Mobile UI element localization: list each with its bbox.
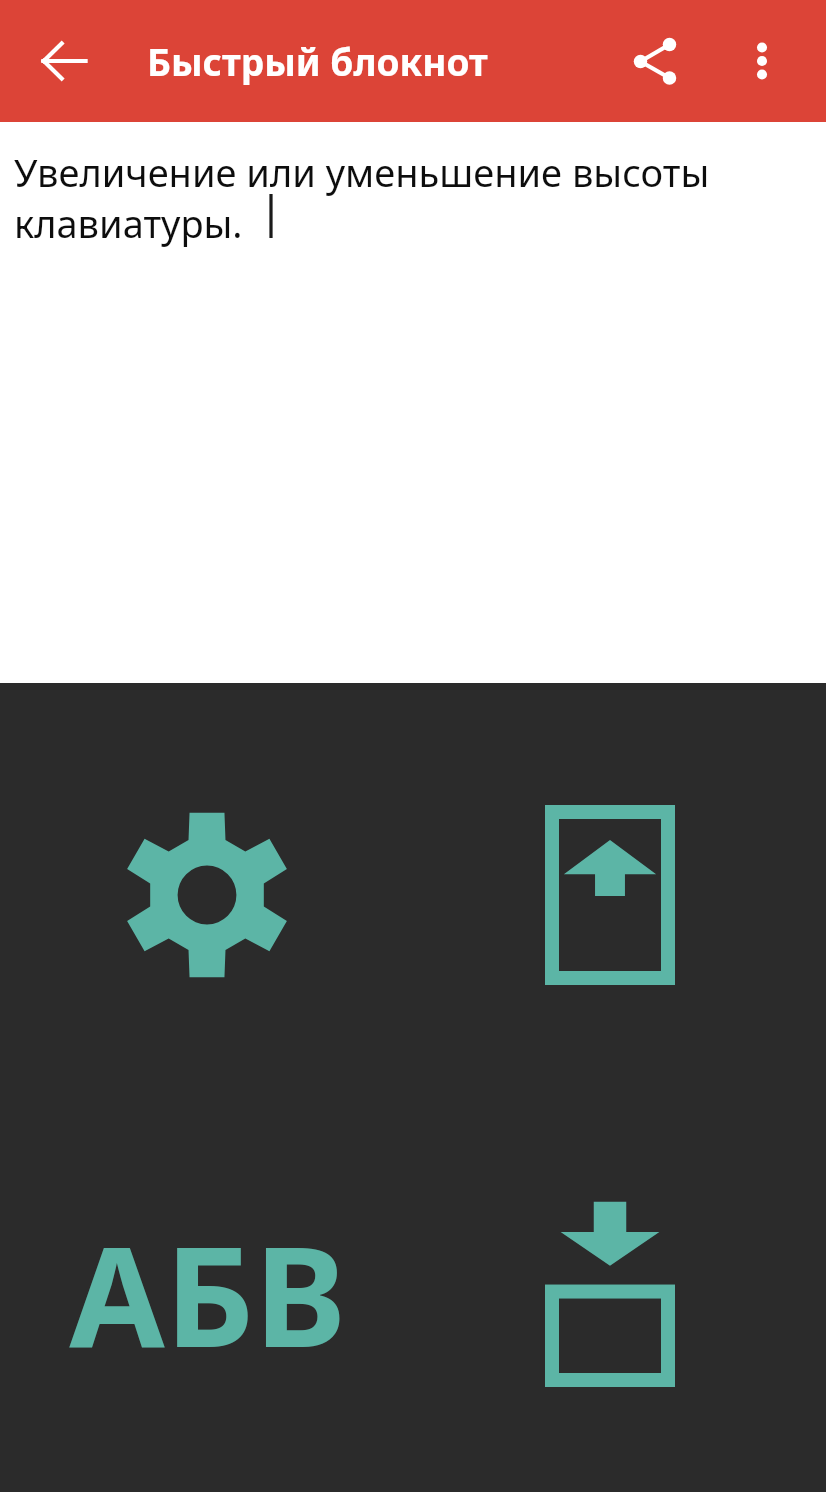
button[interactable]: Share bbox=[614, 19, 698, 103]
button[interactable]: Settings bbox=[27, 695, 387, 1095]
button[interactable]: Decrease keyboard height bbox=[420, 1103, 800, 1483]
staticText: Увеличение или уменьшение высоты клавиат… bbox=[14, 146, 710, 249]
button[interactable]: Увеличение или уменьшение высоты клавиат… bbox=[0, 122, 826, 683]
button[interactable]: АБВ bbox=[27, 1103, 387, 1483]
button[interactable]: More options bbox=[724, 23, 800, 99]
button[interactable]: Increase keyboard height bbox=[420, 695, 800, 1095]
staticText: АБВ bbox=[69, 1199, 346, 1387]
staticText: Быстрый блокнот bbox=[147, 36, 488, 86]
button[interactable]: Back bbox=[26, 23, 102, 99]
